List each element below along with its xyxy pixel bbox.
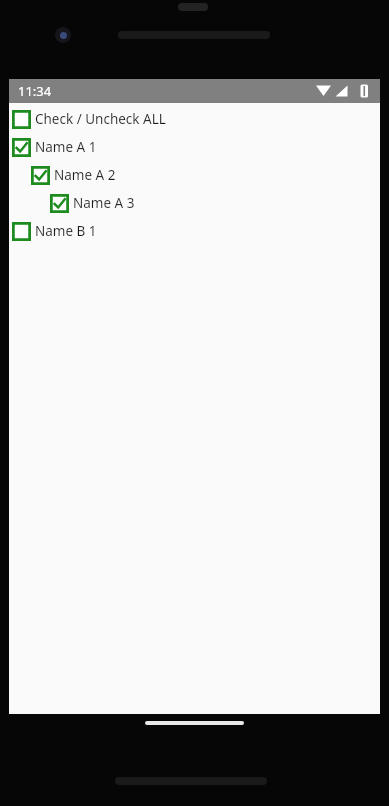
button[interactable]: Unchecked bbox=[9, 105, 380, 133]
button[interactable]: Unchecked bbox=[12, 110, 31, 129]
button[interactable]: Checked bbox=[9, 133, 380, 161]
button[interactable]: Unchecked bbox=[9, 217, 380, 245]
button[interactable]: Checked bbox=[12, 138, 31, 157]
button[interactable]: Checked bbox=[9, 161, 380, 189]
button[interactable]: Unchecked bbox=[12, 222, 31, 241]
staticText: Name A 2 bbox=[54, 166, 116, 184]
staticText: Name A 1 bbox=[35, 138, 97, 156]
button[interactable]: Checked bbox=[31, 166, 50, 185]
staticText: Name B 1 bbox=[35, 222, 97, 240]
staticText: Name A 3 bbox=[73, 194, 135, 212]
staticText: Check / Uncheck ALL bbox=[35, 110, 166, 128]
staticText: 11:34 bbox=[18, 82, 52, 100]
button[interactable]: Checked bbox=[9, 189, 380, 217]
button[interactable]: Checked bbox=[50, 194, 69, 213]
